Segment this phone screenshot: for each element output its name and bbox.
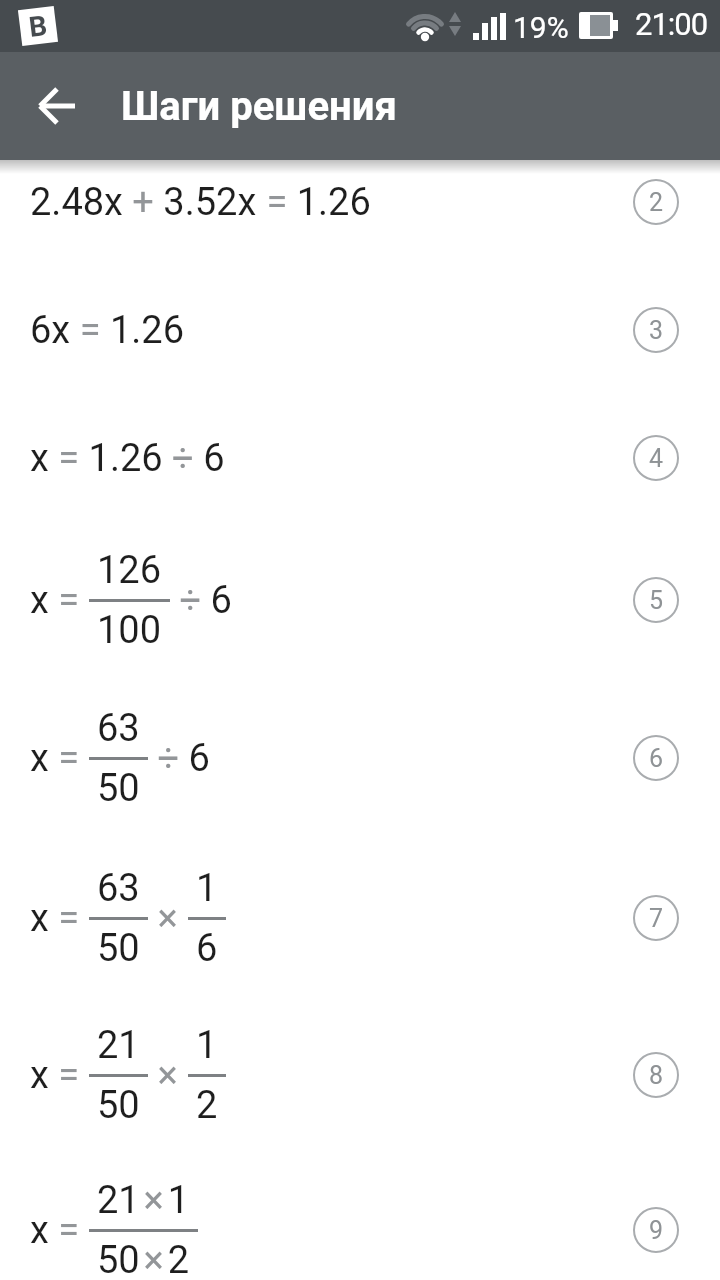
staticText: 9 [649,1216,664,1245]
staticText: 126 [97,548,162,593]
staticText: 6 [196,926,218,971]
staticText: B [27,9,49,44]
staticText: x = [30,1053,89,1098]
staticText: 63 [97,866,140,911]
staticText: 100 [97,608,162,653]
staticText: 50 [97,1083,140,1128]
staticText: x = [30,1208,89,1253]
staticText: 5 [649,586,664,615]
staticText: 2.48x + 3.52x [30,180,257,225]
staticText: 1 [196,1023,218,1068]
staticText: × [148,896,188,941]
button[interactable]: x = [0,985,720,1165]
staticText: = 1.26 [257,180,371,225]
staticText: ÷ 6 [170,578,232,623]
staticText: 2 [649,188,664,217]
staticText: Шаги решения [121,83,397,130]
staticText: ÷ 6 [148,736,210,781]
button[interactable]: x = [0,828,720,1008]
staticText: 50 [97,766,140,811]
staticText: 21 × 1 [97,1178,190,1223]
staticText: 8 [649,1061,664,1090]
button[interactable]: x = [0,668,720,848]
staticText: × [148,1053,188,1098]
staticText: 6 [649,744,664,773]
button[interactable]: x = [0,510,720,690]
staticText: 50 × 2 [97,1238,190,1280]
staticText: 21 [97,1023,140,1068]
button[interactable]: x = 1.26 ÷ 6 [0,368,720,548]
staticText: 21:00 [635,6,708,42]
staticText: 6x = 1.26 [30,308,185,353]
staticText: 3 [649,316,664,345]
button[interactable] [32,80,84,132]
staticText: x = [30,896,89,941]
button[interactable]: 6x = 1.26 [0,240,720,420]
staticText: x = [30,578,89,623]
staticText: x = 1.26 ÷ 6 [30,436,225,481]
button[interactable]: 2.48x + 3.52x [0,112,720,292]
button[interactable]: x = [0,1140,720,1280]
staticText: 4 [649,444,664,473]
staticText: 63 [97,706,140,751]
staticText: 7 [649,904,664,933]
staticText: 50 [97,926,140,971]
staticText: x = [30,736,89,781]
staticText: 1 [196,866,218,911]
staticText: 19% [513,10,569,45]
staticText: 2 [196,1083,218,1128]
